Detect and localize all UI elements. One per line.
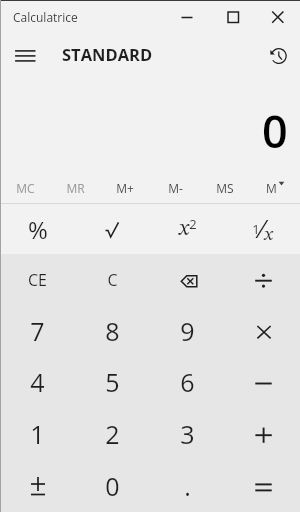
button[interactable]: 4 (0, 356, 75, 408)
staticText: 2 (189, 215, 197, 233)
staticText: 9 (180, 314, 195, 348)
button[interactable]: 1 (225, 204, 300, 254)
staticText: MR (66, 180, 85, 196)
button[interactable]: 0 (75, 460, 150, 512)
staticText: C (107, 269, 118, 291)
button[interactable]: Menu (0, 32, 44, 76)
staticText: 1 (252, 220, 260, 238)
staticText: 0 (105, 469, 120, 503)
staticText: 4 (30, 365, 45, 399)
staticText: . (184, 469, 191, 503)
button[interactable]: Backspace (150, 254, 225, 305)
button[interactable]: Minimize (168, 1, 212, 32)
button[interactable]: Equals (225, 460, 300, 512)
button[interactable]: x (150, 204, 225, 254)
staticText: Calculatrice (13, 9, 78, 25)
staticText: 3 (180, 417, 195, 451)
staticText: CE (28, 269, 47, 291)
button[interactable]: CE (0, 254, 75, 305)
staticText: 8 (105, 314, 120, 348)
button[interactable]: Memory options (250, 164, 300, 203)
button[interactable]: Multiply (225, 305, 300, 356)
staticText: ⁄ (260, 210, 264, 245)
staticText: x (179, 218, 189, 240)
staticText: MS (216, 180, 234, 196)
staticText: x (264, 226, 273, 245)
button[interactable]: MS (200, 164, 250, 203)
button[interactable]: History (256, 32, 300, 76)
staticText: % (28, 213, 48, 246)
staticText: 0 (262, 100, 288, 161)
staticText: M+ (116, 180, 134, 196)
button[interactable]: 8 (75, 305, 150, 356)
button[interactable]: 5 (75, 356, 150, 408)
staticText: M (266, 180, 277, 196)
button[interactable]: Plus (225, 408, 300, 460)
button[interactable]: MR (50, 164, 100, 203)
button[interactable]: Plus minus (0, 460, 75, 512)
button[interactable]: MC (0, 164, 50, 203)
button[interactable]: 3 (150, 408, 225, 460)
button[interactable]: 1 (0, 408, 75, 460)
button[interactable]: Maximize (212, 1, 256, 32)
button[interactable]: 2 (75, 408, 150, 460)
button[interactable]: % (0, 204, 75, 254)
button[interactable] (75, 204, 150, 254)
button[interactable]: 7 (0, 305, 75, 356)
button[interactable]: Minus (225, 356, 300, 408)
staticText: MC (16, 180, 35, 196)
staticText: STANDARD (62, 43, 153, 65)
button[interactable]: Close (256, 1, 300, 32)
button[interactable]: M- (150, 164, 200, 203)
button[interactable]: 9 (150, 305, 225, 356)
staticText: 2 (105, 417, 120, 451)
button[interactable]: 6 (150, 356, 225, 408)
staticText: 7 (30, 314, 45, 348)
button[interactable]: . (150, 460, 225, 512)
button[interactable]: M+ (100, 164, 150, 203)
staticText: 6 (180, 365, 195, 399)
staticText: M- (168, 180, 183, 196)
staticText: 5 (105, 365, 120, 399)
button[interactable]: C (75, 254, 150, 305)
staticText: 1 (30, 417, 45, 451)
button[interactable]: Divide (225, 254, 300, 305)
